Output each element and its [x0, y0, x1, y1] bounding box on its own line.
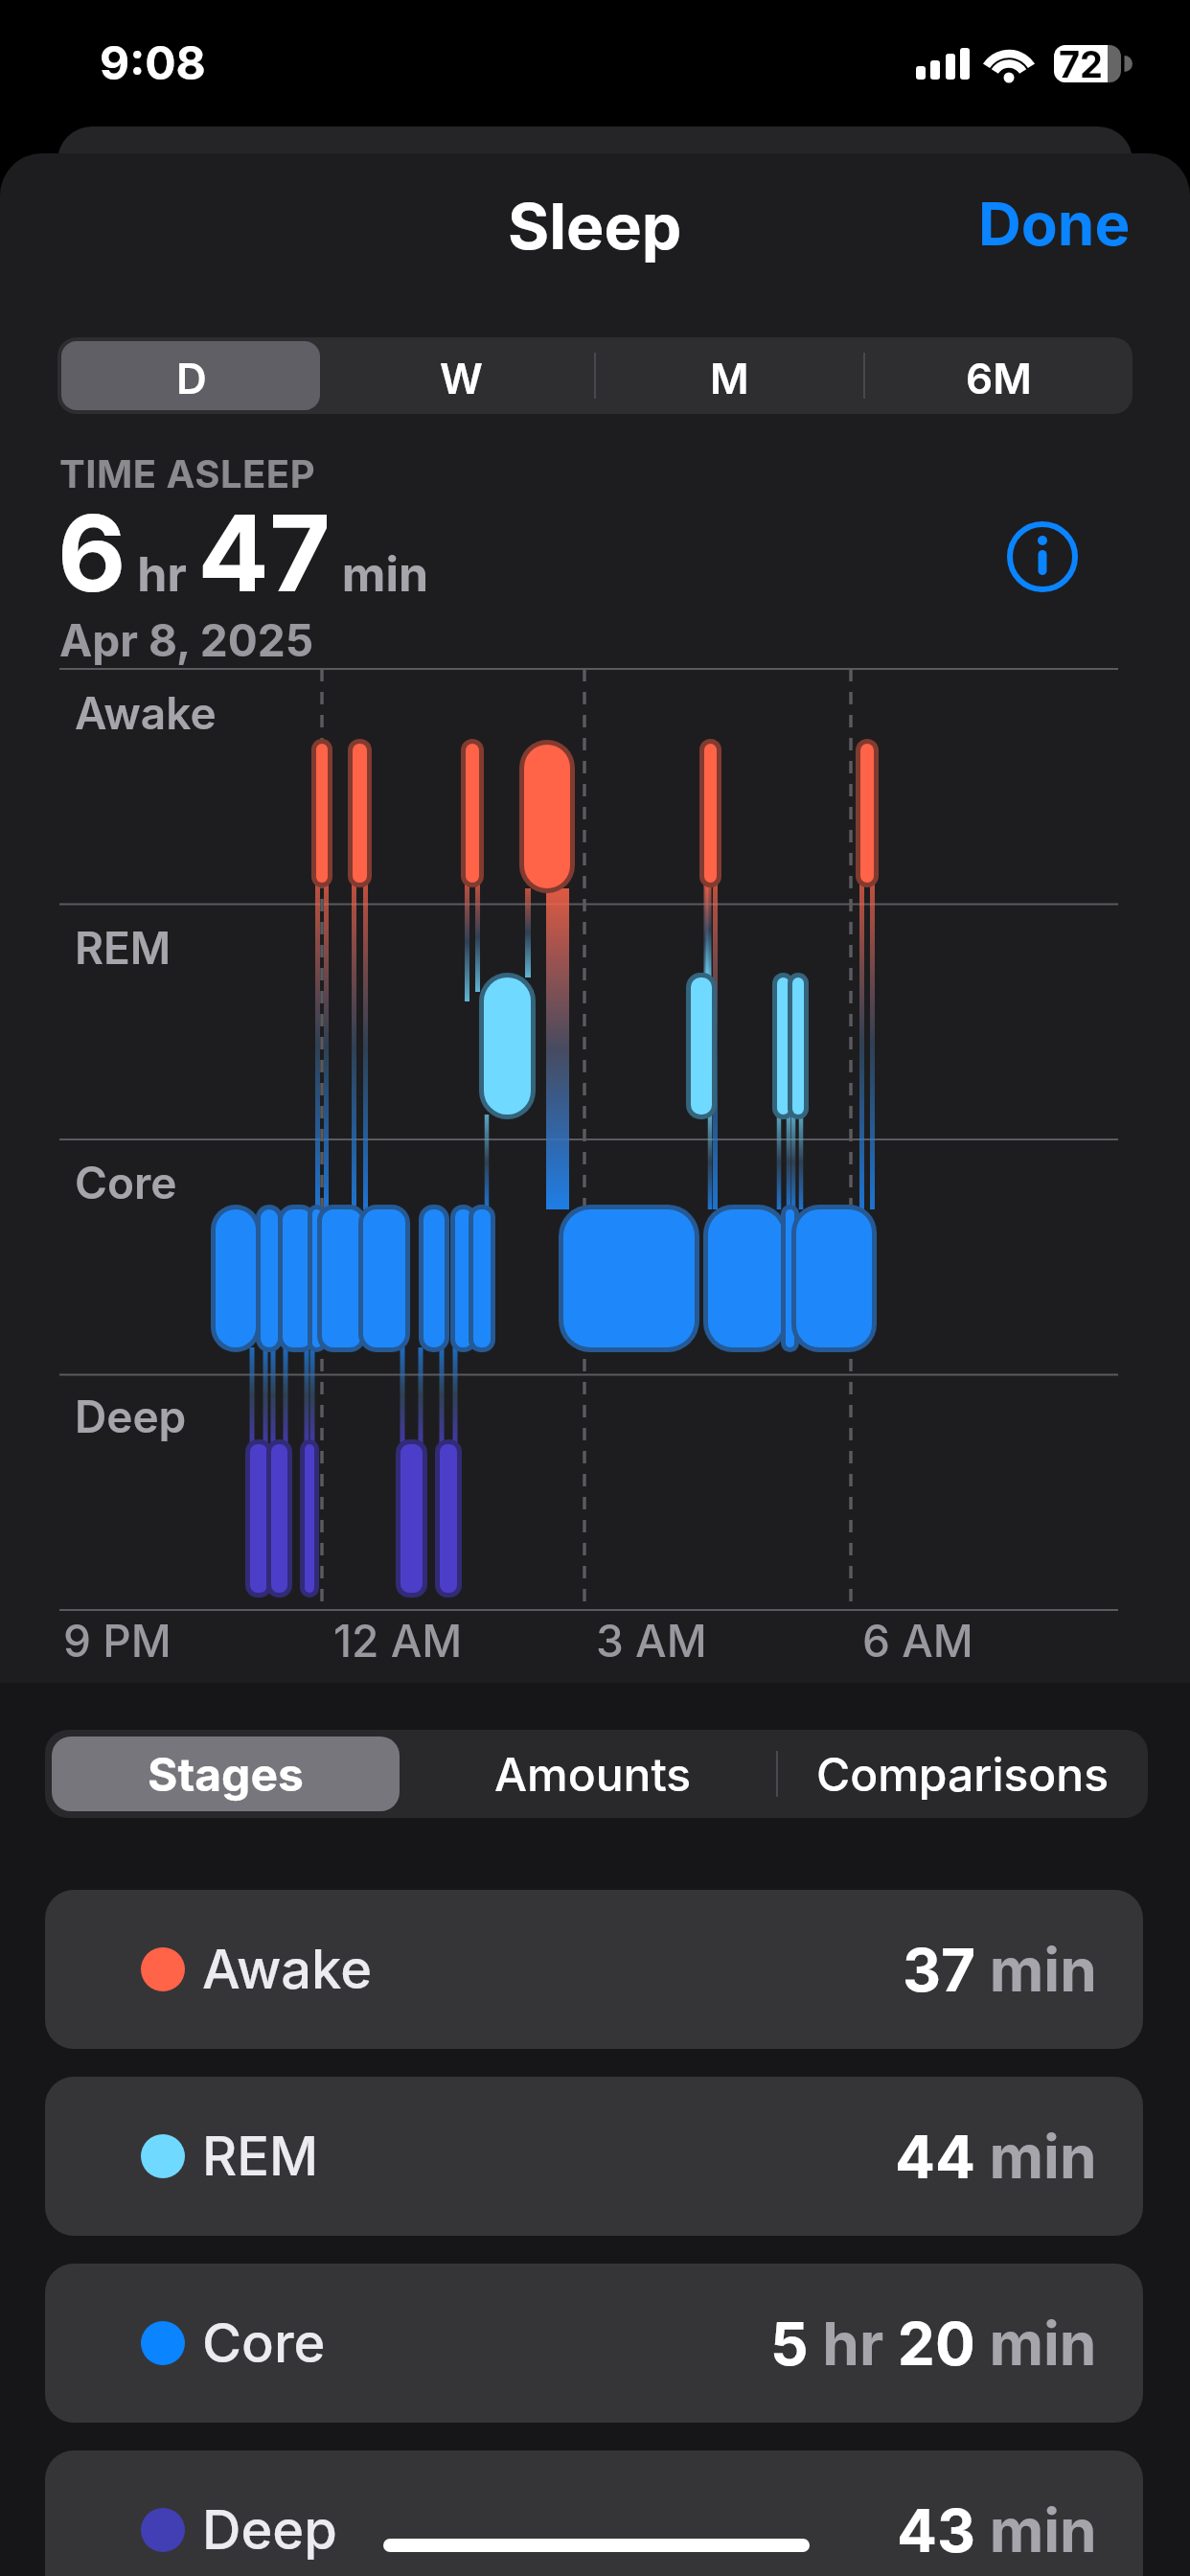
- button[interactable]: Comparisons: [771, 1746, 1155, 1800]
- staticText: Apr 8, 2025: [59, 613, 314, 667]
- button[interactable]: Awake: [45, 1890, 1143, 2049]
- staticText: Amounts: [494, 1746, 692, 1800]
- staticText: D: [176, 353, 207, 403]
- staticText: M: [710, 353, 749, 399]
- button[interactable]: Deep: [45, 2450, 1143, 2576]
- staticText: Sleep: [508, 188, 682, 264]
- staticText: Deep: [202, 2497, 337, 2563]
- button[interactable]: [1007, 521, 1078, 592]
- staticText: 9 PM: [63, 1614, 172, 1667]
- button[interactable]: [52, 1736, 400, 1811]
- button[interactable]: 6M: [941, 353, 1056, 399]
- button[interactable]: Done: [958, 188, 1131, 260]
- staticText: 3 AM: [596, 1614, 707, 1667]
- button[interactable]: Amounts: [478, 1746, 708, 1800]
- staticText: 6M: [966, 353, 1032, 399]
- staticText: 44 min: [895, 2121, 1097, 2193]
- staticText: Awake: [202, 1937, 373, 2002]
- button[interactable]: [61, 341, 320, 410]
- button[interactable]: W: [403, 353, 518, 399]
- staticText: 6 hr 47 min: [57, 489, 429, 616]
- staticText: 6 AM: [862, 1614, 973, 1667]
- button[interactable]: Core: [45, 2264, 1143, 2423]
- staticText: 43 min: [897, 2495, 1097, 2566]
- staticText: Deep: [75, 1390, 187, 1443]
- staticText: TIME ASLEEP: [59, 450, 316, 496]
- staticText: Done: [978, 188, 1131, 260]
- staticText: W: [440, 353, 483, 399]
- staticText: REM: [202, 2124, 319, 2189]
- staticText: Awake: [75, 686, 217, 740]
- button[interactable]: M: [672, 353, 787, 399]
- staticText: Core: [202, 2311, 326, 2376]
- staticText: 37 min: [903, 1934, 1097, 2006]
- staticText: 72: [1059, 42, 1104, 86]
- staticText: Comparisons: [816, 1746, 1110, 1800]
- button[interactable]: REM: [45, 2077, 1143, 2236]
- staticText: 9:08: [100, 34, 206, 90]
- staticText: Stages: [148, 1746, 304, 1802]
- staticText: 5 hr 20 min: [770, 2308, 1097, 2380]
- staticText: REM: [75, 921, 172, 975]
- staticText: 12 AM: [333, 1614, 463, 1667]
- staticText: Core: [75, 1156, 177, 1209]
